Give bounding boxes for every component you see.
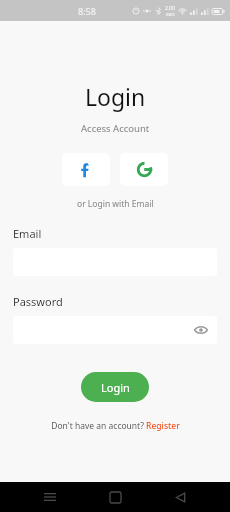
staticText: Don't have an account? Register [51, 420, 180, 432]
button[interactable]: Home [100, 482, 130, 512]
staticText: Login [101, 380, 130, 395]
staticText: 2.00 [165, 5, 175, 12]
button[interactable]: Recents [35, 482, 65, 512]
staticText: KB/S [166, 12, 175, 17]
staticText: Email [13, 226, 42, 241]
button[interactable]: Show password [13, 316, 217, 344]
button[interactable]: Login with Facebook [62, 153, 110, 186]
staticText: or Login with Email [77, 198, 154, 210]
staticText: Password [13, 294, 63, 309]
staticText: Access Account [81, 122, 150, 135]
button[interactable]: Back [165, 482, 195, 512]
staticText: Login [85, 81, 146, 112]
button[interactable]: Login with Google [120, 153, 168, 186]
staticText: 8:58 [78, 5, 96, 17]
button[interactable]: Login [81, 372, 149, 402]
button[interactable]: Don't have an account? Register [45, 418, 186, 434]
button[interactable]: Show password [193, 322, 209, 338]
